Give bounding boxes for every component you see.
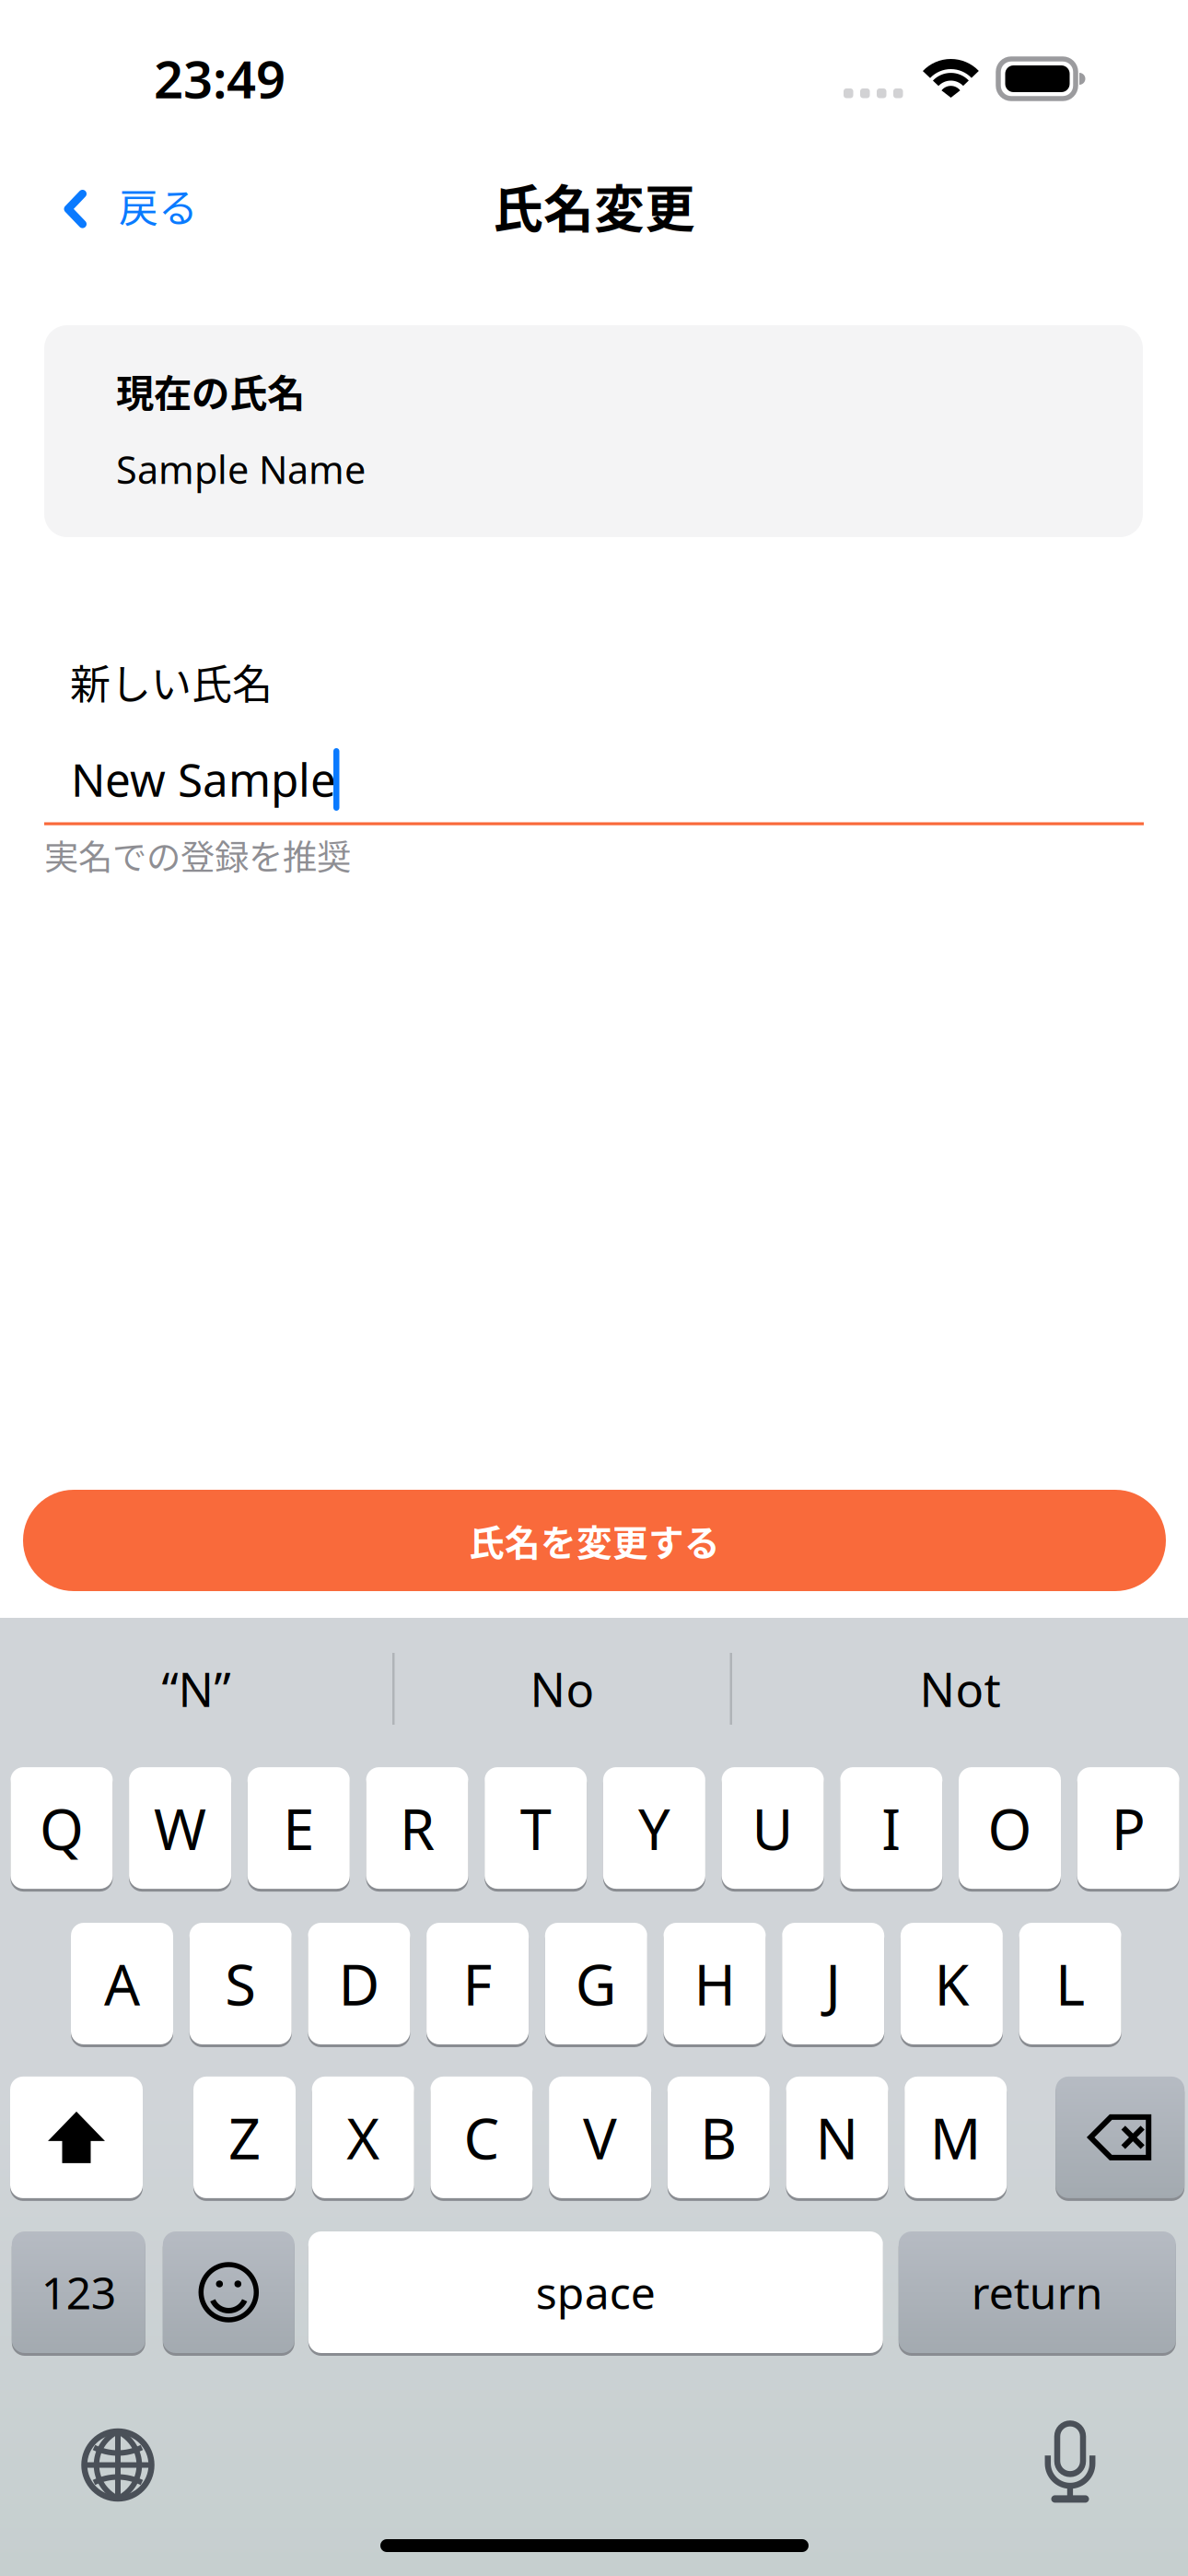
button[interactable]: Dictate [1044, 2423, 1096, 2503]
button[interactable]: L [1019, 1921, 1121, 2046]
button[interactable]: D [308, 1921, 410, 2046]
staticText: K [934, 1945, 969, 2022]
button[interactable]: Delete [1056, 2075, 1185, 2200]
button[interactable]: R [366, 1766, 468, 1890]
button[interactable]: E [248, 1766, 350, 1890]
button[interactable]: N [786, 2075, 888, 2200]
staticText: H [694, 1945, 735, 2022]
staticText: No [530, 1657, 594, 1721]
staticText: space [536, 2262, 656, 2322]
button[interactable]: 123 [12, 2230, 145, 2354]
button[interactable]: G [545, 1921, 647, 2046]
staticText: “N” [162, 1657, 231, 1721]
staticText: F [463, 1945, 492, 2022]
button[interactable]: V [549, 2075, 651, 2200]
staticText: V [583, 2099, 617, 2176]
staticText: U [752, 1789, 793, 1866]
staticText: P [1111, 1789, 1145, 1866]
staticText: C [464, 2099, 500, 2176]
staticText: Not [920, 1657, 1001, 1721]
staticText: Y [638, 1789, 670, 1866]
staticText: 現在の氏名 [116, 363, 305, 418]
button[interactable]: Shift [10, 2075, 143, 2200]
staticText: 氏名を変更する [469, 1515, 720, 1566]
staticText: S [225, 1945, 256, 2022]
staticText: J [825, 1945, 841, 2022]
button[interactable]: J [782, 1921, 884, 2046]
staticText: 氏名変更 [493, 169, 695, 242]
button[interactable]: I [840, 1766, 942, 1890]
button[interactable]: B [667, 2075, 770, 2200]
staticText: New Sample [71, 748, 336, 810]
staticText: O [988, 1789, 1032, 1866]
staticText: Z [228, 2099, 261, 2176]
button[interactable]: “N” [0, 1625, 392, 1752]
button[interactable]: K [901, 1921, 1003, 2046]
button[interactable]: P [1077, 1766, 1179, 1890]
staticText: 23:49 [154, 43, 285, 114]
staticText: Sample Name [116, 443, 366, 495]
button[interactable]: 氏名を変更する [23, 1490, 1166, 1591]
staticText: 実名での登録を推奨 [44, 830, 351, 880]
staticText: I [882, 1789, 901, 1866]
button[interactable]: X [312, 2075, 414, 2200]
staticText: D [338, 1945, 380, 2022]
button[interactable]: 戻る [0, 158, 166, 259]
staticText: E [283, 1789, 314, 1866]
staticText: R [400, 1789, 435, 1866]
button[interactable]: U [722, 1766, 824, 1890]
button[interactable]: Z [193, 2075, 296, 2200]
button[interactable]: Y [603, 1766, 705, 1890]
button[interactable]: W [129, 1766, 231, 1890]
staticText: 新しい氏名 [70, 652, 273, 711]
staticText: M [930, 2099, 981, 2176]
button[interactable]: Emoji [163, 2230, 295, 2354]
staticText: X [346, 2099, 380, 2176]
button[interactable]: Not [732, 1625, 1188, 1752]
staticText: G [575, 1945, 617, 2022]
button[interactable]: A [71, 1921, 173, 2046]
button[interactable]: H [664, 1921, 766, 2046]
button[interactable]: space [308, 2230, 883, 2354]
staticText: W [154, 1789, 206, 1866]
button[interactable]: No [395, 1625, 730, 1752]
staticText: T [520, 1789, 551, 1866]
button[interactable]: O [959, 1766, 1061, 1890]
staticText: N [815, 2099, 859, 2176]
staticText: Q [40, 1789, 84, 1866]
button[interactable]: T [485, 1766, 587, 1890]
staticText: B [700, 2099, 737, 2176]
button[interactable]: C [430, 2075, 533, 2200]
button[interactable]: Q [10, 1766, 113, 1890]
staticText: A [104, 1945, 140, 2022]
staticText: 123 [41, 2262, 116, 2322]
staticText: return [971, 2262, 1103, 2322]
button[interactable]: Next keyboard [81, 2428, 155, 2502]
staticText: 戻る [119, 177, 198, 234]
button[interactable]: F [426, 1921, 529, 2046]
button[interactable]: return [899, 2230, 1176, 2354]
staticText: L [1055, 1945, 1085, 2022]
button[interactable]: M [905, 2075, 1007, 2200]
button[interactable]: S [189, 1921, 292, 2046]
